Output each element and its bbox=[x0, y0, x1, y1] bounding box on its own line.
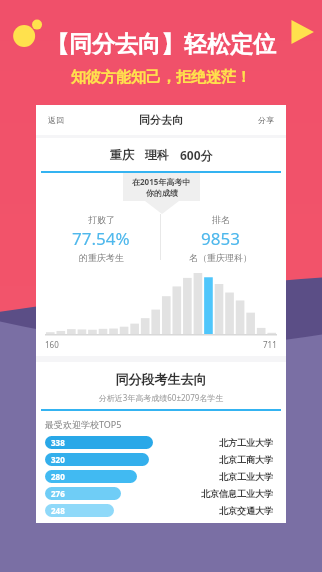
staticText: 北京信息工业大学 bbox=[201, 488, 273, 499]
staticText: 返回 bbox=[48, 115, 64, 125]
staticText: 9853 bbox=[201, 227, 240, 250]
staticText: 名（重庆理科） bbox=[189, 252, 252, 263]
staticText: 711 bbox=[263, 339, 277, 350]
button[interactable]: 返回 bbox=[46, 113, 66, 127]
staticText: 600分 bbox=[180, 147, 213, 163]
staticText: 你的成绩 bbox=[146, 188, 178, 198]
staticText: 分享 bbox=[258, 115, 274, 125]
staticText: 在2015年高考中 bbox=[132, 176, 191, 187]
staticText: 北京工业大学 bbox=[219, 471, 273, 482]
staticText: 最受欢迎学校TOP5 bbox=[45, 418, 122, 430]
staticText: 的重庆考生 bbox=[79, 252, 124, 263]
button[interactable]: 280 bbox=[36, 468, 286, 485]
staticText: 重庆 bbox=[110, 147, 134, 162]
staticText: 北方工业大学 bbox=[219, 437, 273, 448]
staticText: 打败了 bbox=[88, 214, 115, 225]
staticText: 248 bbox=[51, 505, 65, 516]
staticText: 160 bbox=[45, 339, 59, 350]
staticText: 280 bbox=[51, 471, 65, 482]
staticText: 同分去向 bbox=[66, 113, 256, 127]
staticText: 【同分去向】轻松定位 bbox=[0, 30, 322, 59]
staticText: 知彼方能知己，拒绝迷茫！ bbox=[0, 68, 322, 87]
staticText: 北京工商大学 bbox=[219, 454, 273, 465]
staticText: 276 bbox=[51, 488, 65, 499]
staticText: 理科 bbox=[145, 147, 169, 162]
staticText: 338 bbox=[51, 437, 65, 448]
staticText: 77.54% bbox=[72, 227, 130, 250]
staticText: 分析近3年高考成绩60±2079名学生 bbox=[36, 392, 286, 403]
button[interactable]: 320 bbox=[36, 451, 286, 468]
button[interactable]: 338 bbox=[36, 434, 286, 451]
staticText: 排名 bbox=[212, 214, 230, 225]
button[interactable]: 分享 bbox=[256, 113, 276, 127]
button[interactable]: 248 bbox=[36, 502, 286, 519]
staticText: 同分段考生去向 bbox=[36, 371, 286, 387]
button[interactable]: 276 bbox=[36, 485, 286, 502]
staticText: 320 bbox=[51, 454, 65, 465]
staticText: 北京交通大学 bbox=[219, 505, 273, 516]
